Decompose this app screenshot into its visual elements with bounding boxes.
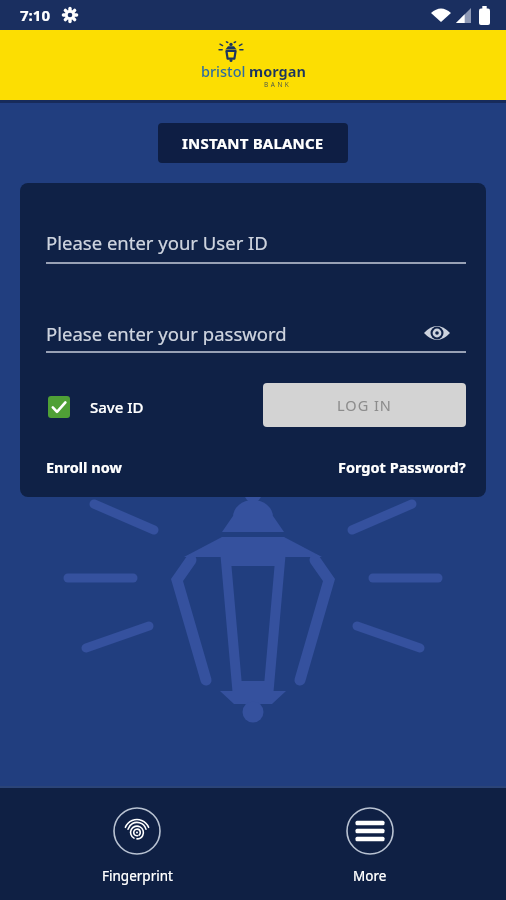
staticText: More <box>353 867 387 885</box>
button[interactable]: LOG IN <box>263 383 466 427</box>
staticText: morgan <box>249 61 306 81</box>
staticText: Enroll now <box>46 457 122 477</box>
staticText: Please enter your password <box>46 321 287 346</box>
staticText: Save ID <box>90 397 144 417</box>
button[interactable]: INSTANT BALANCE <box>158 123 348 163</box>
staticText: Fingerprint <box>102 867 173 885</box>
button[interactable]: More <box>320 807 420 885</box>
button[interactable]: Save ID <box>48 396 144 418</box>
staticText: Forgot Password? <box>338 457 466 477</box>
staticText: bristol <box>201 61 246 81</box>
staticText: LOG IN <box>337 395 392 415</box>
button[interactable] <box>424 324 450 342</box>
staticText: BANK <box>264 80 292 89</box>
button[interactable]: Enroll now <box>46 455 122 479</box>
staticText: Please enter your User ID <box>46 230 268 255</box>
staticText: INSTANT BALANCE <box>182 133 324 153</box>
button[interactable]: Fingerprint <box>87 807 187 885</box>
button[interactable]: Forgot Password? <box>320 455 466 479</box>
staticText: 7:10 <box>20 5 50 25</box>
